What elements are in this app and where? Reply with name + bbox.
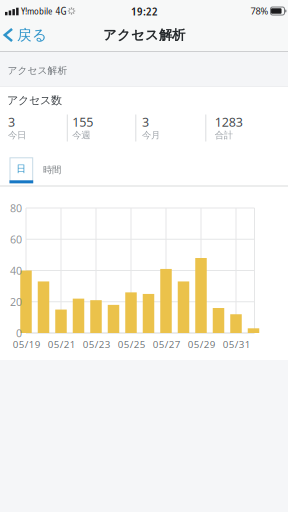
staticText: 3: [142, 113, 149, 130]
staticText: 40: [10, 263, 22, 278]
staticText: 60: [10, 232, 22, 246]
staticText: 今月: [142, 129, 160, 141]
staticText: アクセス解析: [7, 64, 67, 77]
staticText: 4G: [55, 4, 66, 18]
button[interactable]: 時間: [37, 159, 67, 181]
staticText: 3: [8, 113, 15, 130]
staticText: アクセス解析: [103, 27, 185, 43]
staticText: 0: [16, 326, 22, 340]
staticText: 20: [10, 294, 22, 309]
staticText: 日: [16, 163, 26, 175]
staticText: 1283: [215, 113, 243, 130]
staticText: 05/21: [48, 338, 76, 351]
button[interactable]: 日: [9, 157, 33, 183]
staticText: 05/19: [13, 338, 41, 351]
staticText: 19:22: [131, 3, 158, 19]
staticText: 今週: [72, 129, 90, 141]
staticText: 80: [10, 201, 22, 215]
staticText: 78%: [250, 5, 268, 17]
staticText: 05/31: [223, 338, 251, 351]
staticText: 今日: [8, 129, 26, 141]
staticText: 155: [72, 113, 93, 130]
staticText: アクセス数: [7, 93, 62, 107]
button[interactable]: 戻る: [3, 26, 47, 44]
staticText: 05/25: [118, 338, 146, 351]
staticText: 戻る: [17, 26, 47, 44]
staticText: 05/23: [83, 338, 111, 351]
staticText: 05/27: [153, 338, 181, 351]
staticText: Y!mobile: [21, 4, 52, 17]
staticText: 05/29: [188, 338, 216, 351]
staticText: 合計: [215, 129, 233, 141]
staticText: 時間: [43, 164, 61, 176]
